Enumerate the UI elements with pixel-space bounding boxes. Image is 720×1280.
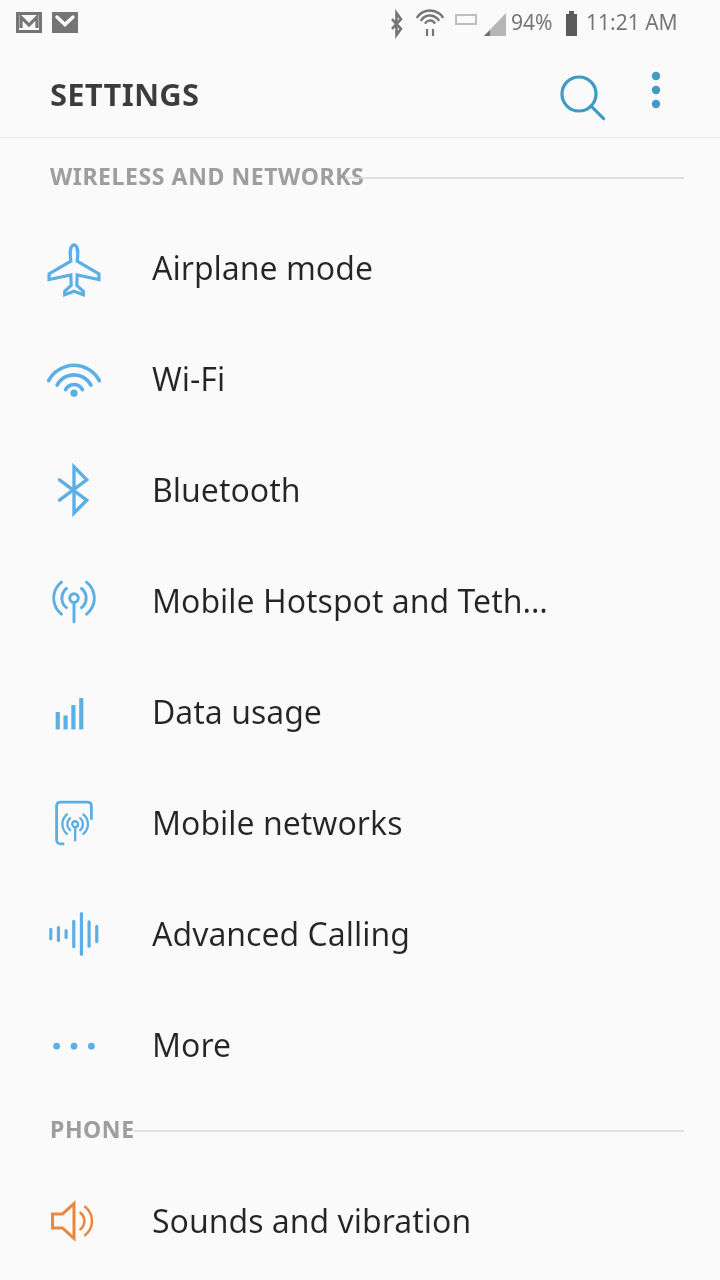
button[interactable]: Airplane mode (0, 212, 720, 323)
button[interactable]: Mobile networks (0, 767, 720, 878)
staticText: 94% (511, 8, 553, 37)
button[interactable]: More options (628, 64, 684, 120)
staticText: Mobile Hotspot and Teth… (152, 579, 548, 623)
button[interactable]: Mobile Hotspot and Teth… (0, 545, 720, 656)
button[interactable]: Data usage (0, 656, 720, 767)
staticText: WIRELESS AND NETWORKS (50, 160, 365, 191)
button[interactable]: Search (548, 64, 612, 128)
staticText: Sounds and vibration (152, 1199, 472, 1243)
staticText: Airplane mode (152, 246, 373, 290)
staticText: SETTINGS (50, 73, 200, 115)
staticText: Data usage (152, 690, 322, 734)
staticText: PHONE (50, 1113, 135, 1144)
button[interactable]: Wi-Fi (0, 323, 720, 434)
staticText: More (152, 1023, 232, 1067)
staticText: Wi-Fi (152, 357, 226, 401)
staticText: Mobile networks (152, 801, 403, 845)
button[interactable]: Advanced Calling (0, 878, 720, 989)
staticText: Bluetooth (152, 468, 301, 512)
button[interactable]: Sounds and vibration (0, 1165, 720, 1276)
button[interactable]: Bluetooth (0, 434, 720, 545)
staticText: Advanced Calling (152, 912, 410, 956)
staticText: 11:21 AM (586, 8, 678, 37)
button[interactable]: More (0, 989, 720, 1100)
